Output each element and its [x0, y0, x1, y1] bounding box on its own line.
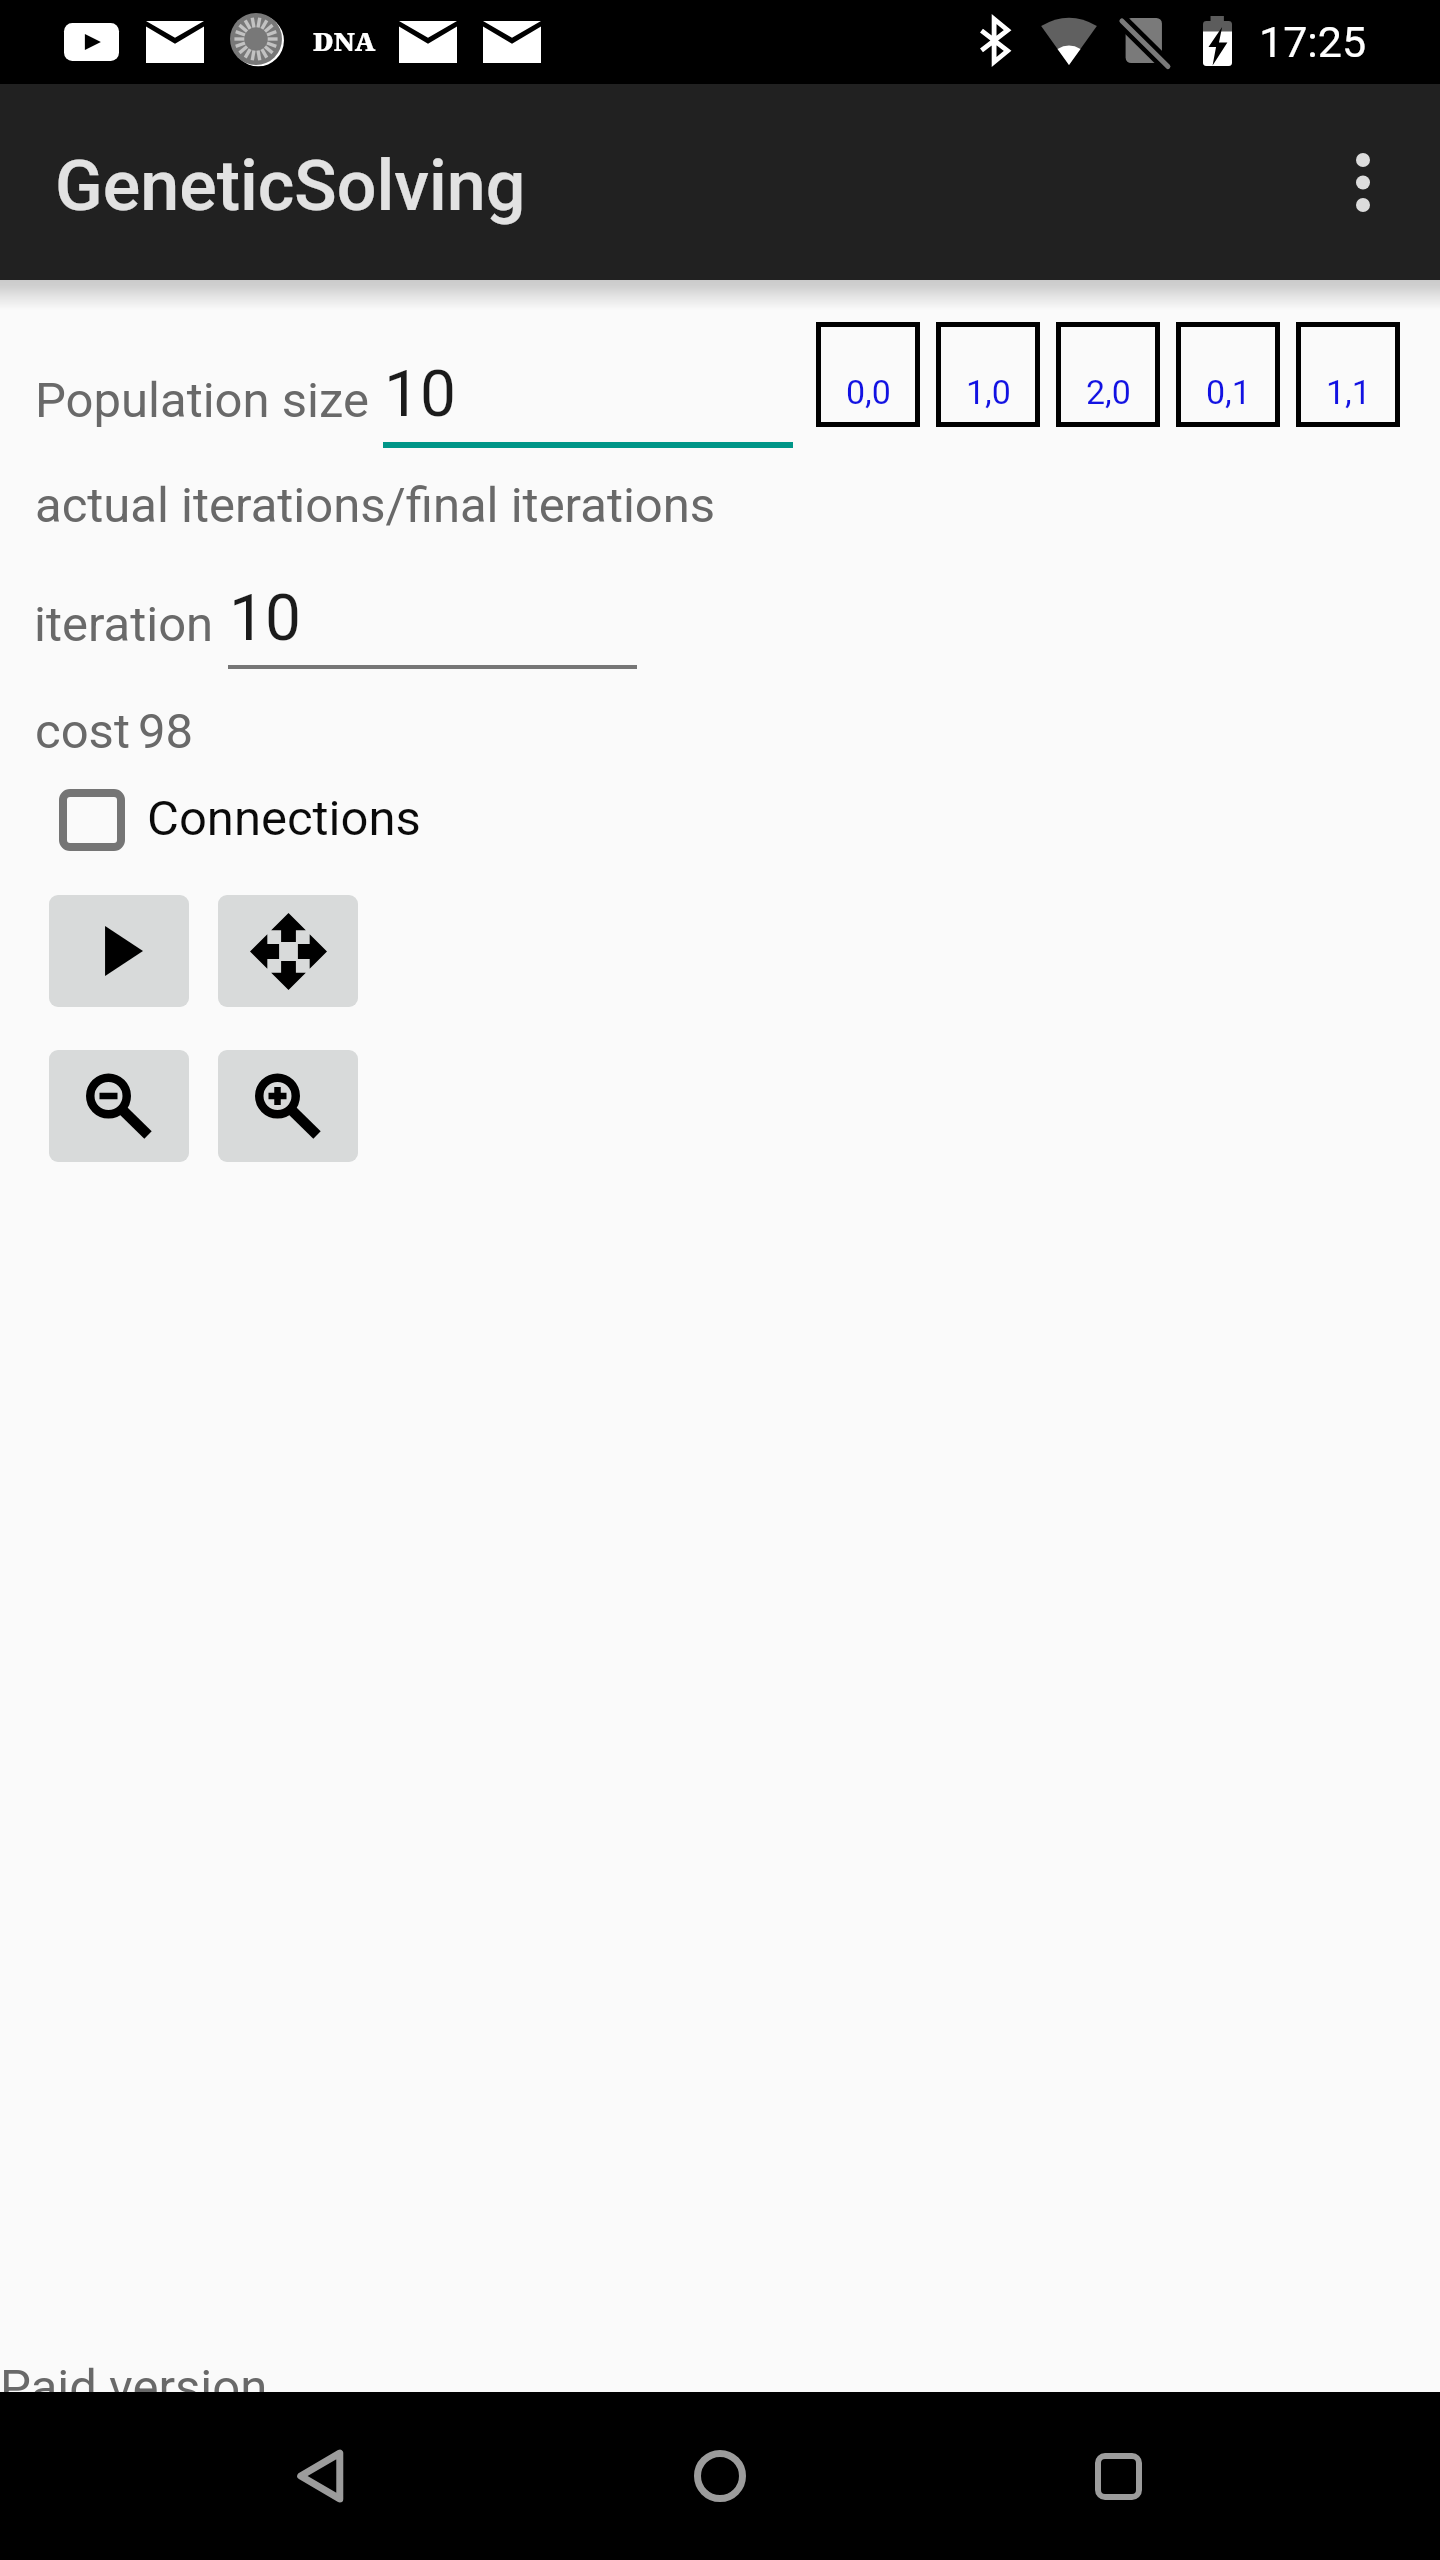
button[interactable]: Paid version — [0, 2359, 268, 2416]
staticText: 1,1 — [1326, 372, 1371, 412]
button[interactable]: Back — [236, 2392, 404, 2560]
button[interactable]: More options — [1291, 84, 1435, 280]
staticText: 0,1 — [1206, 372, 1251, 412]
button[interactable]: 1,0 — [936, 322, 1040, 427]
staticText: 10 — [384, 357, 456, 432]
staticText: 1,0 — [966, 372, 1011, 412]
staticText: 0,0 — [846, 372, 891, 412]
staticText: cost — [35, 703, 130, 760]
staticText: 10 — [229, 581, 301, 656]
button[interactable]: Connections — [40, 778, 440, 862]
staticText: 17:25 — [1259, 17, 1367, 67]
button[interactable]: 0,0 — [816, 322, 920, 427]
staticText: DNA — [313, 23, 376, 58]
staticText: 2,0 — [1086, 372, 1131, 412]
staticText: GeneticSolving — [55, 145, 526, 227]
button[interactable]: Run — [49, 895, 189, 1007]
staticText: 98 — [138, 703, 194, 760]
button[interactable]: Home — [636, 2392, 804, 2560]
button[interactable]: Zoom out — [49, 1050, 189, 1162]
staticText: Population size — [35, 372, 369, 429]
button[interactable]: 2,0 — [1056, 322, 1160, 427]
button[interactable]: Recent apps — [1034, 2392, 1202, 2560]
button[interactable]: Pan — [218, 895, 358, 1007]
button[interactable]: 1,1 — [1296, 322, 1400, 427]
staticText: Connections — [147, 790, 421, 847]
button[interactable]: Zoom in — [218, 1050, 358, 1162]
staticText: iteration — [34, 596, 214, 653]
staticText: actual iterations/final iterations — [35, 477, 716, 534]
button[interactable]: 0,1 — [1176, 322, 1280, 427]
